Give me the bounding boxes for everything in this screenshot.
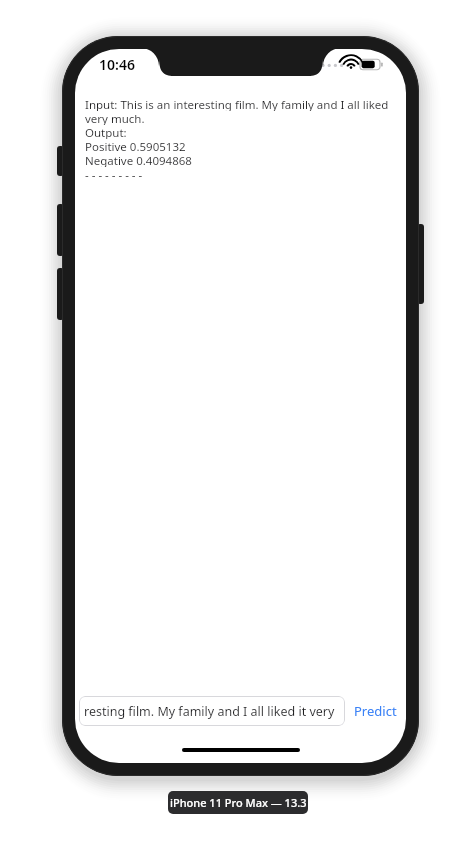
staticText: Output: — [85, 125, 127, 139]
staticText: Negative 0.4094868 — [85, 153, 192, 167]
button[interactable]: resting film. My family and I all liked … — [79, 696, 345, 726]
staticText: - - - - - - - - - — [85, 167, 143, 181]
staticText: Positive 0.5905132 — [85, 139, 186, 153]
staticText: resting film. My family and I all liked … — [84, 703, 341, 720]
button[interactable]: Predict — [352, 698, 399, 724]
staticText: very much. — [85, 111, 145, 125]
staticText: Predict — [354, 702, 397, 720]
staticText: 10:46 — [99, 55, 135, 74]
staticText: iPhone 11 Pro Max — 13.3 — [170, 795, 307, 810]
staticText: Input: This is an interesting film. My f… — [85, 97, 396, 111]
